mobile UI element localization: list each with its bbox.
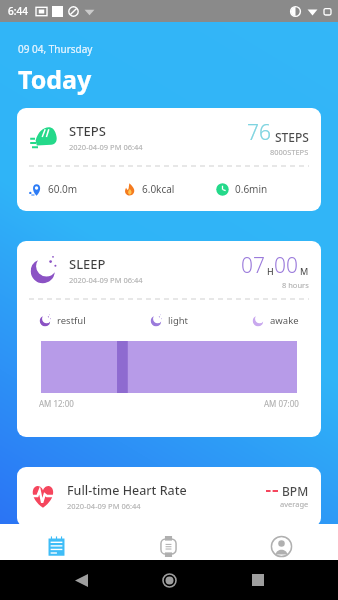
button[interactable]: light <box>150 314 189 327</box>
staticText: 0.6min <box>235 182 268 196</box>
staticText: SLEEP <box>69 255 106 273</box>
staticText: STEPS <box>275 129 309 145</box>
staticText: 07 <box>241 251 265 280</box>
staticText: M <box>300 265 309 277</box>
button[interactable]: restful <box>39 314 86 327</box>
button[interactable]: SLEEP <box>17 241 321 437</box>
staticText: 2020-04-09 PM 06:44 <box>69 275 143 285</box>
staticText: 8000STEPS <box>270 147 309 157</box>
button[interactable]: Full-time Heart Rate <box>17 467 321 527</box>
staticText: 09 04, Thursday <box>18 42 93 56</box>
staticText: 6.0kcal <box>142 182 175 196</box>
staticText: average <box>280 499 309 509</box>
staticText: AM 07:00 <box>264 398 299 409</box>
staticText: Today <box>18 62 92 96</box>
staticText: 8 hours <box>282 280 309 290</box>
staticText: 00 <box>274 251 298 280</box>
staticText: 76 <box>247 118 271 147</box>
staticText: 2020-04-09 PM 06:44 <box>67 501 141 511</box>
button[interactable]: Profile <box>225 528 338 564</box>
button[interactable]: awake <box>252 314 299 327</box>
staticText: awake <box>270 314 299 327</box>
staticText: restful <box>57 314 86 327</box>
staticText: 60.0m <box>48 182 78 196</box>
staticText: light <box>168 314 189 327</box>
staticText: AM 12:00 <box>39 398 74 409</box>
staticText: Full-time Heart Rate <box>67 482 187 499</box>
staticText: STEPS <box>69 122 106 140</box>
staticText: 6:44 <box>8 4 28 18</box>
button[interactable]: Device <box>112 528 225 564</box>
staticText: 2020-04-09 PM 06:44 <box>69 142 143 152</box>
button[interactable]: Records <box>0 528 112 564</box>
staticText: BPM <box>282 483 309 499</box>
staticText: H <box>267 265 274 277</box>
button[interactable]: STEPS <box>17 108 321 211</box>
